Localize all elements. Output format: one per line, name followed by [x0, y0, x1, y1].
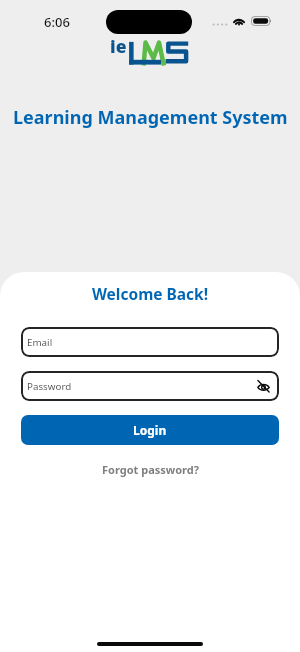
button[interactable]: Forgot password? [94, 460, 207, 479]
button[interactable]: Password [21, 371, 279, 401]
button[interactable]: Show password [252, 375, 274, 397]
staticText: Password [27, 380, 72, 393]
staticText: 6:06 [44, 13, 70, 31]
staticText: Learning Management System [13, 105, 288, 130]
staticText: Email [27, 336, 53, 349]
staticText: Login [133, 422, 167, 438]
staticText: ie [110, 34, 127, 58]
button[interactable]: Email [21, 327, 279, 357]
button[interactable]: Login [21, 415, 279, 445]
staticText: Welcome Back! [0, 283, 300, 304]
